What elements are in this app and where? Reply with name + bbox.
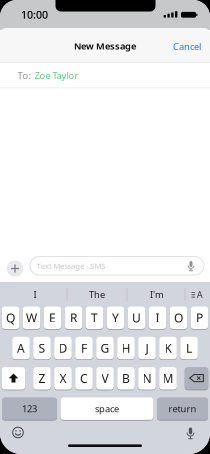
staticText: R <box>70 310 77 326</box>
button[interactable]: D <box>54 336 72 360</box>
staticText: J <box>145 340 148 356</box>
staticText: A <box>17 340 25 356</box>
button[interactable]: Delete <box>185 367 208 390</box>
staticText: New Message <box>74 40 136 52</box>
staticText: 10:00 <box>21 7 48 22</box>
button[interactable]: A <box>12 336 30 360</box>
button[interactable]: space <box>60 397 153 420</box>
button[interactable]: Z <box>33 367 51 390</box>
staticText: To: <box>17 69 31 82</box>
button[interactable]: Switch keyboard <box>187 284 207 304</box>
button[interactable]: W <box>23 306 40 329</box>
button[interactable]: N <box>138 367 156 390</box>
button[interactable]: I <box>6 284 64 304</box>
staticText: L <box>186 340 192 356</box>
staticText: Cancel <box>173 40 201 53</box>
button[interactable]: I <box>149 306 166 329</box>
staticText: I <box>33 288 36 301</box>
staticText: 123 <box>22 402 37 415</box>
staticText: F <box>81 340 87 356</box>
staticText: The <box>89 288 105 301</box>
button[interactable]: return <box>157 397 208 420</box>
staticText: U <box>132 310 141 326</box>
button[interactable]: M <box>159 367 177 390</box>
button[interactable]: G <box>96 336 114 360</box>
button[interactable]: R <box>65 306 82 329</box>
button[interactable]: Shift <box>2 367 25 390</box>
staticText: space <box>95 402 119 415</box>
staticText: I'm <box>150 288 164 301</box>
button[interactable]: E <box>44 306 61 329</box>
staticText: I <box>155 310 159 326</box>
staticText: M <box>162 370 173 386</box>
button[interactable]: The <box>68 284 126 304</box>
button[interactable]: P <box>191 306 208 329</box>
staticText: B <box>122 370 130 386</box>
staticText: A <box>197 288 203 301</box>
button[interactable]: Emoji <box>10 424 26 440</box>
button[interactable]: B <box>117 367 135 390</box>
button[interactable]: F <box>75 336 93 360</box>
button[interactable]: Cancel <box>173 40 201 53</box>
staticText: Text Message · SMS <box>36 260 118 272</box>
staticText: N <box>142 370 151 386</box>
button[interactable]: Y <box>107 306 124 329</box>
staticText: H <box>121 340 130 356</box>
button[interactable]: 123 <box>2 397 57 420</box>
button[interactable]: T <box>86 306 103 329</box>
button[interactable]: U <box>128 306 145 329</box>
button[interactable]: Add attachment <box>7 260 23 277</box>
staticText: X <box>59 370 66 386</box>
staticText: return <box>168 402 196 415</box>
staticText: K <box>164 340 171 356</box>
button[interactable]: I'm <box>129 284 185 304</box>
button[interactable]: Q <box>2 306 19 329</box>
staticText: T <box>91 310 98 326</box>
staticText: W <box>26 310 37 326</box>
button[interactable]: X <box>54 367 72 390</box>
staticText: D <box>58 340 67 356</box>
button[interactable]: C <box>75 367 93 390</box>
staticText: V <box>101 370 108 386</box>
staticText: Q <box>6 310 15 326</box>
button[interactable]: J <box>138 336 156 360</box>
staticText: E <box>49 310 56 326</box>
button[interactable]: S <box>33 336 51 360</box>
staticText: Y <box>112 310 119 326</box>
button[interactable]: H <box>117 336 135 360</box>
button[interactable]: O <box>170 306 187 329</box>
button[interactable]: V <box>96 367 114 390</box>
button[interactable]: K <box>159 336 177 360</box>
button[interactable]: Dictation <box>182 425 198 441</box>
staticText: G <box>100 340 109 356</box>
button[interactable]: L <box>180 336 198 360</box>
button[interactable]: Text Message · SMS <box>30 256 204 276</box>
button[interactable]: To: <box>0 63 210 88</box>
staticText: P <box>196 310 203 326</box>
staticText: Zoe Taylor <box>34 69 78 82</box>
staticText: C <box>80 370 88 386</box>
staticText: O <box>174 310 183 326</box>
staticText: S <box>38 340 45 356</box>
staticText: Z <box>38 370 45 386</box>
